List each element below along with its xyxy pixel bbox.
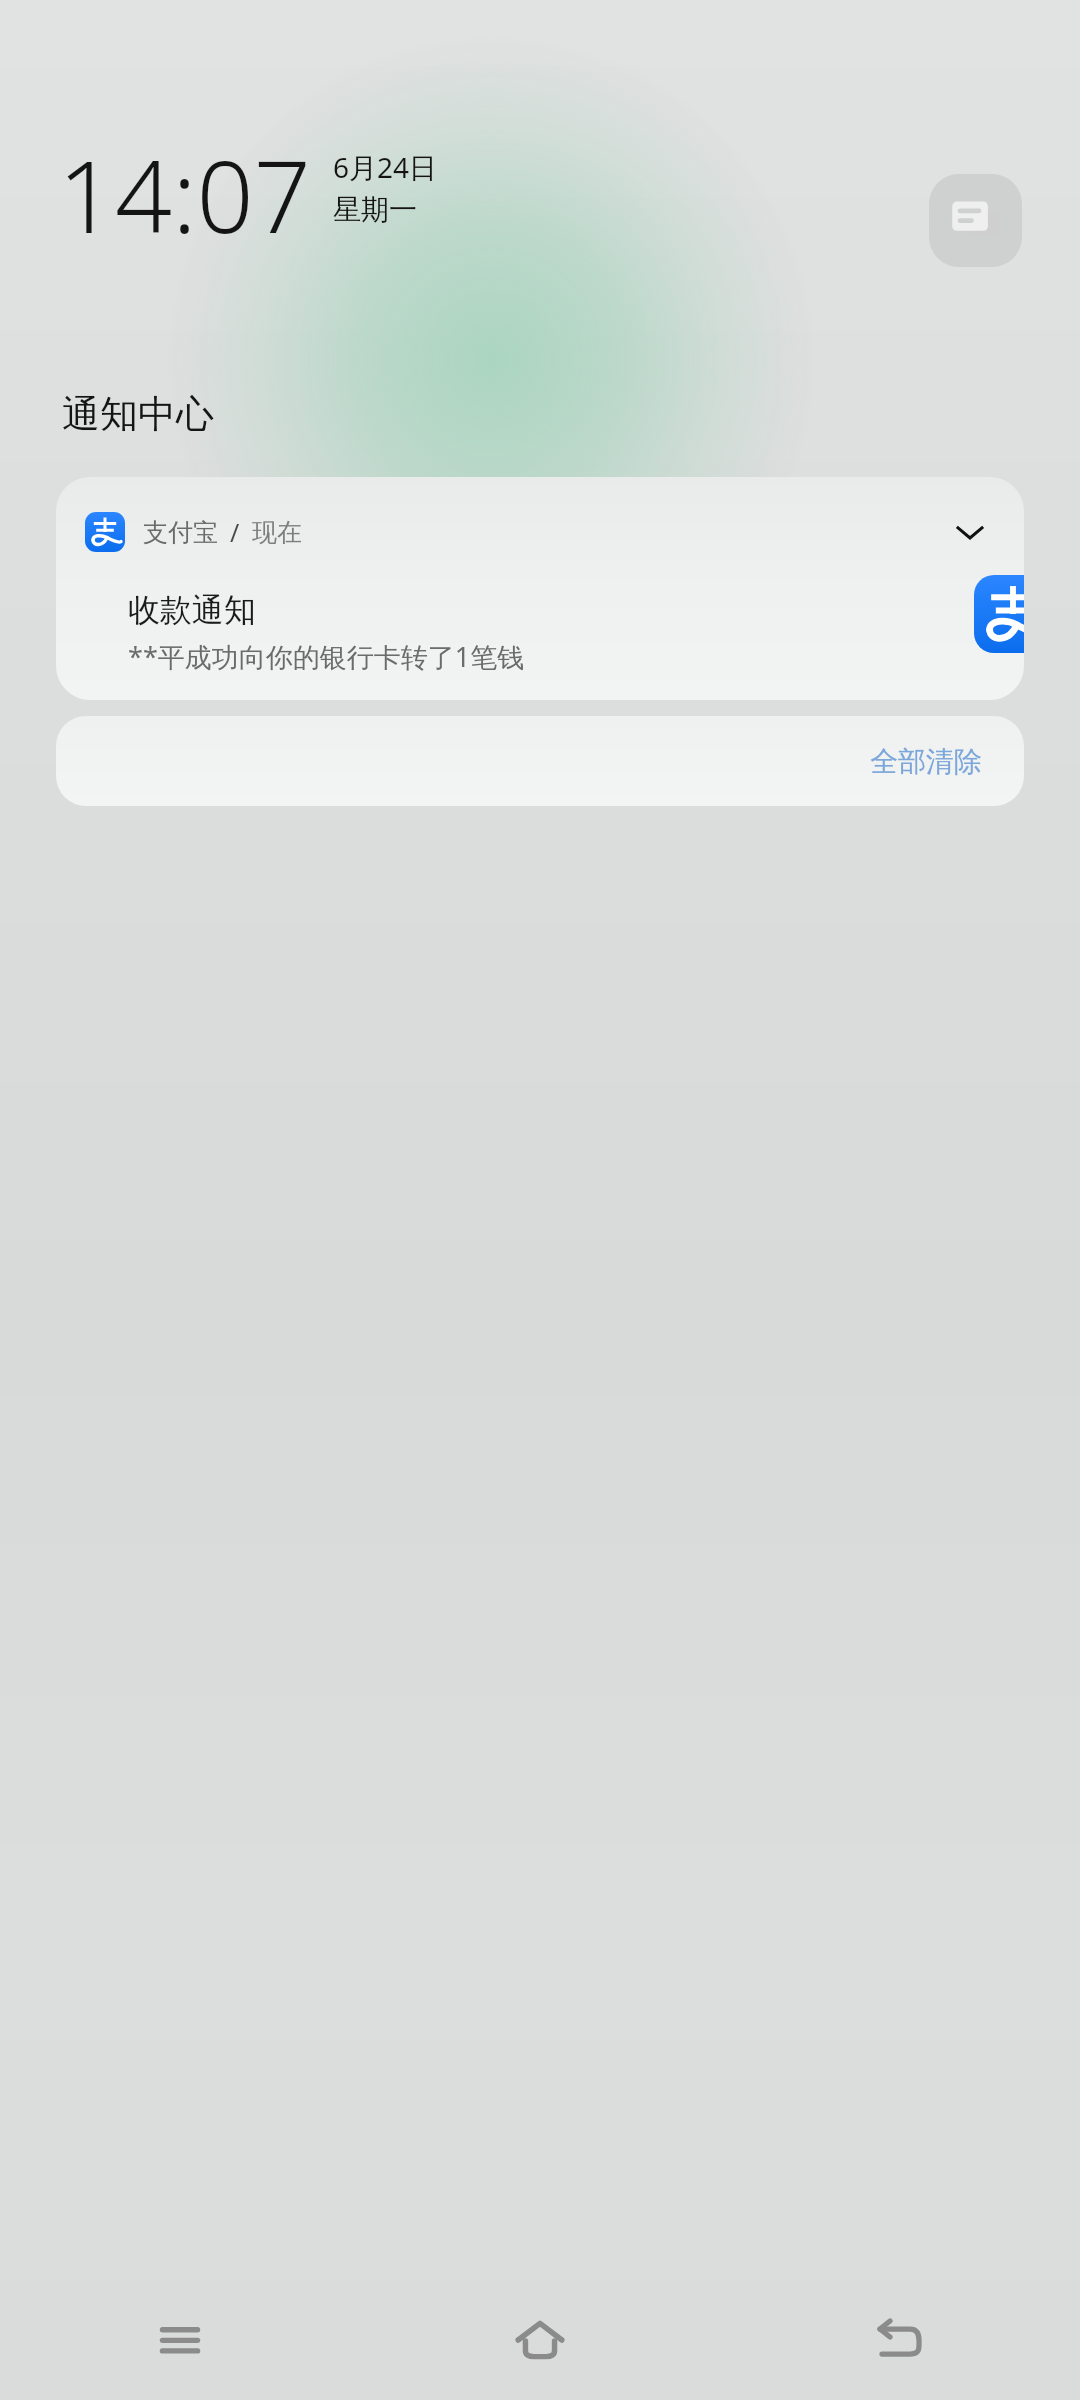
- button[interactable]: Home: [360, 2280, 720, 2400]
- staticText: 收款通知: [128, 590, 256, 630]
- staticText: 星期一: [333, 192, 417, 227]
- button[interactable]: Notifications: [929, 174, 1022, 267]
- staticText: 现在: [252, 517, 302, 548]
- staticText: **平成功向你的银行卡转了1笔钱: [128, 638, 525, 675]
- button[interactable]: 支付宝: [56, 477, 1024, 700]
- staticText: 支付宝: [143, 517, 218, 548]
- button[interactable]: 全部清除: [56, 716, 1024, 806]
- staticText: 14:07: [58, 126, 311, 262]
- staticText: 全部清除: [870, 744, 982, 779]
- button[interactable]: Back: [720, 2280, 1080, 2400]
- button[interactable]: Recents: [0, 2280, 360, 2400]
- button[interactable]: Expand: [946, 508, 994, 556]
- staticText: 6月24日: [333, 148, 438, 186]
- staticText: /: [230, 515, 240, 549]
- staticText: 通知中心: [62, 390, 214, 438]
